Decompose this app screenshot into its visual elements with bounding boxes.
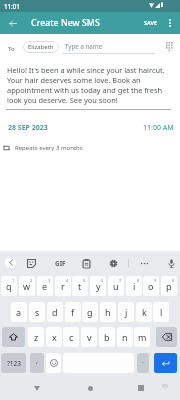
button[interactable]: k <box>136 302 152 322</box>
button[interactable]: f <box>65 302 81 322</box>
button[interactable]: SAVE <box>140 14 164 32</box>
staticText: g <box>87 306 93 318</box>
staticText: k <box>142 306 147 318</box>
button[interactable]: More <box>136 255 152 271</box>
staticText: c <box>69 331 74 343</box>
staticText: s <box>35 306 40 318</box>
button[interactable]: Settings <box>105 255 121 271</box>
button[interactable]: o <box>143 276 159 296</box>
staticText: n <box>122 331 128 343</box>
staticText: 4 <box>66 278 69 283</box>
staticText: Create New SMS <box>31 17 100 29</box>
staticText: SAVE <box>144 19 158 27</box>
button[interactable]: Dialpad <box>162 39 176 53</box>
button[interactable]: y <box>90 276 106 296</box>
button[interactable]: g <box>82 302 98 322</box>
staticText: 1 <box>12 278 15 283</box>
button[interactable]: m <box>134 327 150 347</box>
staticText: b <box>104 331 110 343</box>
button[interactable]: Back <box>27 378 47 398</box>
button[interactable]: Enter <box>154 353 177 373</box>
staticText: p <box>166 280 172 292</box>
staticText: q <box>6 280 12 292</box>
button[interactable]: Hide keyboard <box>155 377 175 397</box>
button[interactable]: t <box>72 276 88 296</box>
button[interactable]: ?123 <box>1 353 26 373</box>
staticText: z <box>34 331 39 343</box>
staticText: 2 <box>30 278 33 283</box>
staticText: u <box>113 280 119 292</box>
button[interactable]: Emoji <box>46 353 61 373</box>
staticText: Hello! It's been a while since your last… <box>7 65 175 105</box>
button[interactable]: v <box>81 327 97 347</box>
staticText: 6 <box>101 278 104 283</box>
button[interactable]: Clipboard <box>78 255 94 271</box>
staticText: h <box>105 306 111 318</box>
button[interactable]: z <box>28 327 44 347</box>
button[interactable]: Recents <box>131 378 151 398</box>
button[interactable]: b <box>99 327 115 347</box>
button[interactable]: h <box>100 302 116 322</box>
staticText: t <box>78 280 82 292</box>
button[interactable]: GIF <box>51 257 69 269</box>
staticText: v <box>87 331 92 343</box>
staticText: 28 SEP 2023 <box>8 123 48 133</box>
staticText: l <box>160 306 163 318</box>
button[interactable]: w <box>19 276 35 296</box>
staticText: e <box>42 280 48 292</box>
staticText: , <box>36 356 38 366</box>
button[interactable]: r <box>55 276 71 296</box>
button[interactable]: a <box>11 302 27 322</box>
button[interactable]: x <box>46 327 62 347</box>
staticText: GIF <box>55 259 66 268</box>
staticText: Repeats every 3 months <box>15 144 83 152</box>
staticText: i <box>133 280 136 292</box>
button[interactable]: Home <box>80 378 100 398</box>
staticText: Elizabeth <box>28 43 54 51</box>
button[interactable]: Elizabeth <box>23 41 59 53</box>
button[interactable]: j <box>118 302 134 322</box>
button[interactable]: Back <box>5 257 16 268</box>
staticText: r <box>61 280 65 292</box>
button[interactable]: More options <box>163 16 177 30</box>
staticText: x <box>52 331 57 343</box>
button[interactable]: s <box>29 302 45 322</box>
staticText: To <box>8 45 15 53</box>
button[interactable]: p <box>161 276 177 296</box>
button[interactable]: Backspace <box>156 327 177 347</box>
staticText: 7 <box>119 278 122 283</box>
staticText: 11:01 <box>4 2 20 10</box>
button[interactable]: q <box>1 276 17 296</box>
button[interactable]: i <box>126 276 142 296</box>
staticText: Type a name <box>65 42 103 50</box>
staticText: f <box>71 306 75 318</box>
button[interactable]: l <box>153 302 169 322</box>
staticText: . <box>142 356 144 366</box>
button[interactable]: u <box>108 276 124 296</box>
staticText: 8 <box>137 278 140 283</box>
button[interactable]: Stickers <box>23 255 39 271</box>
staticText: 5 <box>83 278 86 283</box>
staticText: j <box>125 306 128 318</box>
staticText: a <box>16 306 22 318</box>
staticText: o <box>148 280 154 292</box>
staticText: d <box>52 306 58 318</box>
button[interactable]: Back <box>5 15 21 31</box>
button[interactable]: c <box>63 327 79 347</box>
button[interactable]: , <box>30 353 44 373</box>
button[interactable]: Shift <box>2 327 25 347</box>
staticText: w <box>23 280 31 292</box>
button[interactable]: e <box>37 276 53 296</box>
staticText: y <box>96 280 101 292</box>
staticText: 11:00 AM <box>143 123 174 133</box>
staticText: 9 <box>154 278 157 283</box>
button[interactable]: Voice input <box>163 255 179 271</box>
button[interactable]: . <box>137 353 149 373</box>
button[interactable]: d <box>47 302 63 322</box>
staticText: m <box>138 331 147 343</box>
button[interactable]: n <box>117 327 133 347</box>
staticText: 3 <box>48 278 51 283</box>
staticText: 0 <box>172 278 175 283</box>
staticText: ?123 <box>7 359 21 368</box>
